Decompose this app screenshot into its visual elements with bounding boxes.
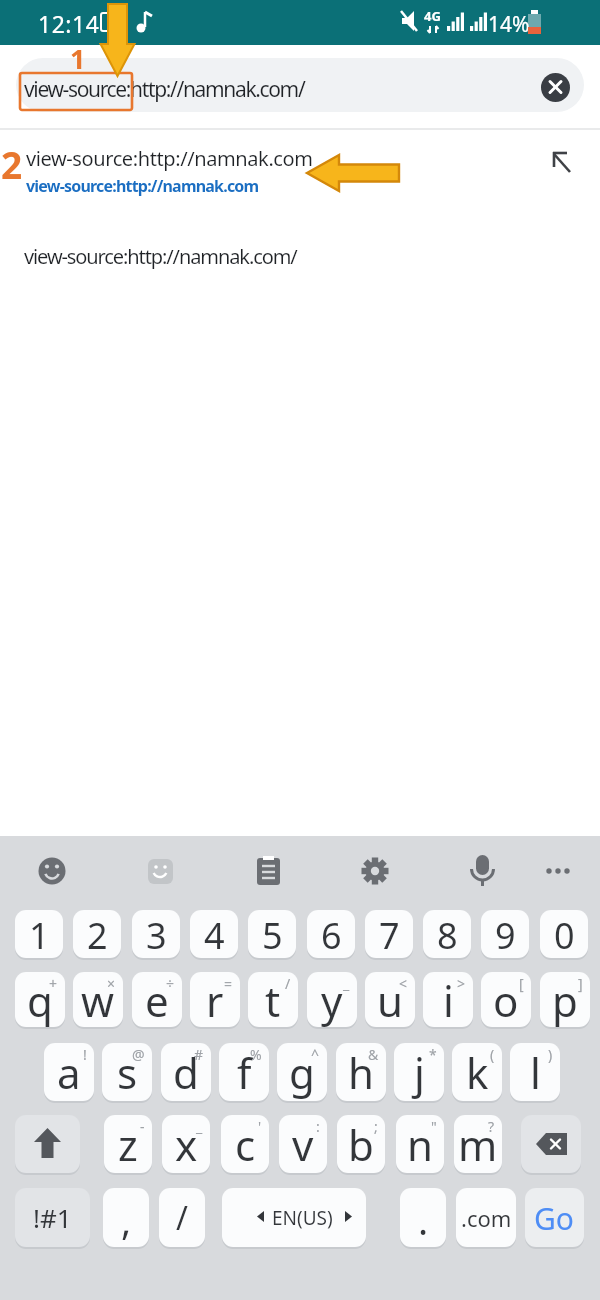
staticText: ? xyxy=(488,1117,495,1136)
staticText: ) xyxy=(548,1045,553,1064)
button[interactable]: k xyxy=(452,1043,502,1101)
button[interactable]: 4 xyxy=(190,910,238,958)
button[interactable]: q xyxy=(15,972,65,1027)
staticText: ( xyxy=(490,1045,495,1064)
button[interactable]: w xyxy=(73,972,123,1027)
button[interactable]: 6 xyxy=(307,910,355,958)
staticText: q xyxy=(27,972,53,1027)
button[interactable]: h xyxy=(336,1043,386,1101)
staticText: view-source:http://namnak.com xyxy=(26,145,313,172)
staticText: % xyxy=(250,1045,262,1064)
button[interactable] xyxy=(525,1188,584,1247)
staticText: g xyxy=(289,1044,315,1101)
staticText: 14% xyxy=(488,10,530,39)
staticText: ÷ xyxy=(166,974,175,993)
staticText: b xyxy=(348,1116,374,1173)
staticText: r xyxy=(206,972,224,1027)
button[interactable]: c xyxy=(221,1115,269,1173)
staticText: 8 xyxy=(437,911,458,958)
staticText: .com xyxy=(461,1203,512,1233)
button[interactable]: 7 xyxy=(365,910,413,958)
button[interactable]: a xyxy=(44,1043,94,1101)
staticText: + xyxy=(49,974,58,993)
staticText: 6 xyxy=(321,911,342,958)
button[interactable]: m xyxy=(454,1115,502,1173)
button[interactable]: p xyxy=(540,972,590,1027)
staticText: × xyxy=(107,974,116,993)
staticText: f xyxy=(237,1044,252,1101)
staticText: * xyxy=(429,1045,437,1064)
staticText: view-source:http://namnak.com/ xyxy=(24,75,305,104)
staticText: Go xyxy=(534,1198,574,1239)
button[interactable] xyxy=(0,236,600,282)
button[interactable]: 2 xyxy=(73,910,121,958)
button[interactable]: 3 xyxy=(132,910,180,958)
button[interactable]: g xyxy=(277,1043,327,1101)
staticText: # xyxy=(194,1045,204,1064)
staticText: 9 xyxy=(495,911,516,958)
button[interactable] xyxy=(541,73,570,102)
button[interactable]: 8 xyxy=(423,910,471,958)
button[interactable] xyxy=(222,1188,366,1247)
staticText: x xyxy=(175,1116,198,1173)
staticText: 2 xyxy=(87,911,108,958)
staticText: = xyxy=(224,974,233,993)
button[interactable]: z xyxy=(104,1115,152,1173)
staticText: < xyxy=(399,974,408,993)
button[interactable]: d xyxy=(161,1043,211,1101)
button[interactable]: j xyxy=(394,1043,444,1101)
staticText: s xyxy=(117,1044,138,1101)
staticText: 7 xyxy=(379,911,400,958)
button[interactable]: s xyxy=(102,1043,152,1101)
staticText: m xyxy=(458,1116,498,1173)
button[interactable] xyxy=(15,1115,80,1173)
button[interactable]: n xyxy=(396,1115,444,1173)
staticText: ; xyxy=(374,1117,378,1136)
button[interactable] xyxy=(0,140,600,206)
staticText: y xyxy=(321,972,343,1027)
button[interactable] xyxy=(16,58,584,112)
staticText: " xyxy=(431,1117,437,1136)
staticText: , xyxy=(121,1194,132,1246)
staticText: i xyxy=(443,972,454,1027)
button[interactable] xyxy=(521,1115,581,1173)
staticText: 5 xyxy=(262,911,283,958)
button[interactable]: 5 xyxy=(248,910,296,958)
button[interactable]: 0 xyxy=(540,910,588,958)
staticText: 12:14 xyxy=(38,8,100,39)
button[interactable]: 1 xyxy=(15,910,63,958)
staticText: view-source:http://namnak.com/ xyxy=(24,243,297,270)
button[interactable]: f xyxy=(219,1043,269,1101)
staticText: ! xyxy=(83,1045,87,1064)
button[interactable]: 9 xyxy=(481,910,529,958)
button[interactable]: , xyxy=(103,1188,149,1247)
button[interactable]: r xyxy=(190,972,240,1027)
button[interactable]: y xyxy=(307,972,357,1027)
button[interactable]: u xyxy=(365,972,415,1027)
button[interactable]: .com xyxy=(456,1188,516,1247)
staticText: k xyxy=(466,1044,489,1101)
button[interactable]: x xyxy=(162,1115,210,1173)
button[interactable]: b xyxy=(337,1115,385,1173)
staticText: u xyxy=(377,972,403,1027)
staticText: v xyxy=(292,1116,314,1173)
staticText: 2 xyxy=(1,139,23,189)
button[interactable]: o xyxy=(481,972,531,1027)
staticText: !#1 xyxy=(33,1200,72,1235)
button[interactable]: i xyxy=(423,972,473,1027)
staticText: view-source:http://namnak.com xyxy=(26,175,259,197)
button[interactable]: !#1 xyxy=(15,1188,90,1247)
staticText: o xyxy=(493,972,519,1027)
button[interactable]: l xyxy=(510,1043,560,1101)
staticText: 4G xyxy=(424,7,441,25)
button[interactable]: t xyxy=(248,972,298,1027)
staticText: a xyxy=(57,1044,81,1101)
staticText: 0 xyxy=(554,911,575,958)
button[interactable]: v xyxy=(279,1115,327,1173)
button[interactable]: / xyxy=(159,1188,205,1247)
staticText: _ xyxy=(196,1117,203,1136)
staticText: 3 xyxy=(146,911,167,958)
staticText: 1 xyxy=(70,40,86,77)
button[interactable]: e xyxy=(132,972,182,1027)
button[interactable]: . xyxy=(400,1188,446,1247)
